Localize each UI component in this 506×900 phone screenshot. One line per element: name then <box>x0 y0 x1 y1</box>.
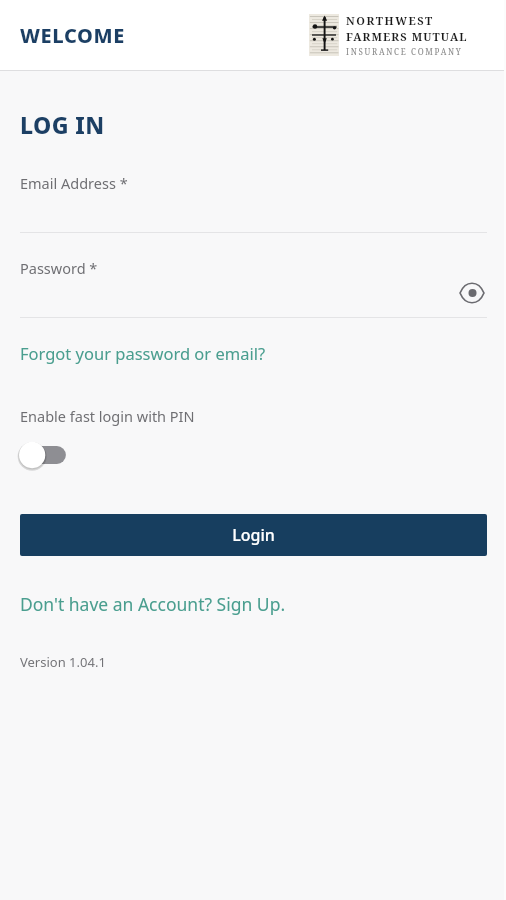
button[interactable]: Forgot your password or email? <box>20 338 266 368</box>
staticText: NORTHWEST <box>346 13 434 28</box>
staticText: FARMERS MUTUAL <box>346 29 468 44</box>
staticText: Don't have an Account? Sign Up. <box>20 592 286 616</box>
staticText: Enable fast login with PIN <box>20 406 195 426</box>
button[interactable]: Email Address * <box>0 173 506 233</box>
staticText: Login <box>232 524 275 546</box>
staticText: Password * <box>20 258 98 278</box>
button[interactable]: Don't have an Account? Sign Up. <box>20 592 286 616</box>
staticText: LOG IN <box>20 109 105 140</box>
button[interactable]: Password * <box>0 258 506 318</box>
staticText: Forgot your password or email? <box>20 342 266 364</box>
staticText: Version 1.04.1 <box>20 653 106 671</box>
staticText: Email Address * <box>20 173 128 193</box>
button[interactable]: Login <box>20 514 487 556</box>
staticText: WELCOME <box>20 22 125 49</box>
button[interactable]: Show password <box>452 273 492 313</box>
button[interactable]: Enable fast login with PIN <box>16 437 74 473</box>
staticText: INSURANCE COMPANY <box>346 46 463 57</box>
